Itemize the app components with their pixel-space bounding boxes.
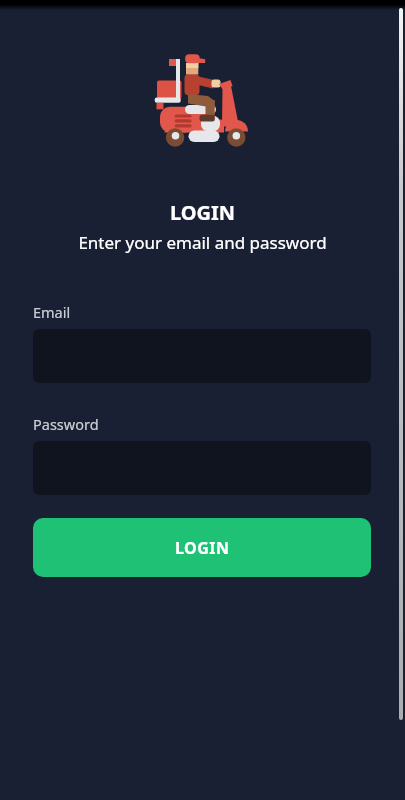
staticText: LOGIN xyxy=(175,537,230,559)
staticText: LOGIN xyxy=(0,199,405,226)
staticText: Enter your email and password xyxy=(0,231,405,254)
staticText: Password xyxy=(33,414,99,434)
button[interactable]: LOGIN xyxy=(33,518,371,577)
staticText: Email xyxy=(33,302,71,322)
